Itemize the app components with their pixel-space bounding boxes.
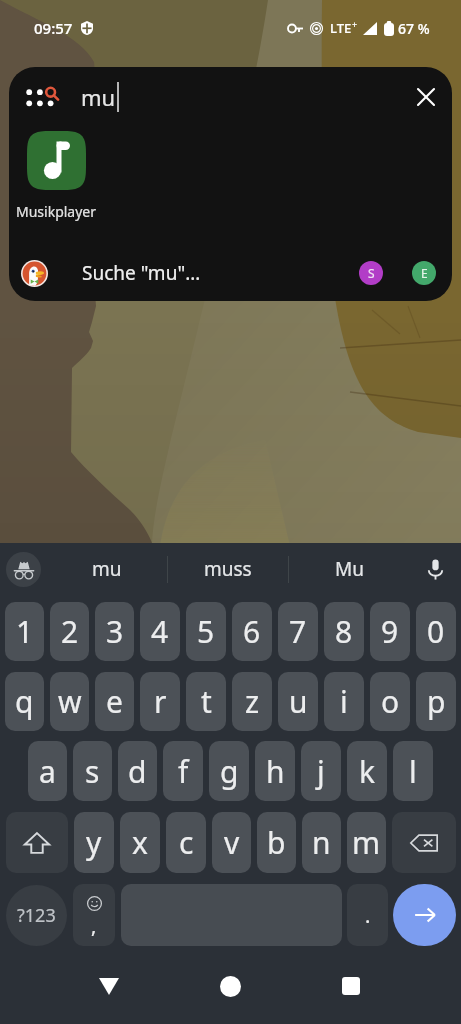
- button[interactable]: y: [74, 812, 114, 873]
- button[interactable]: c: [166, 812, 206, 873]
- button[interactable]: b: [257, 812, 296, 873]
- staticText: z: [245, 681, 260, 722]
- button[interactable]: S: [359, 261, 383, 285]
- staticText: v: [224, 822, 240, 863]
- staticText: b: [267, 822, 286, 863]
- staticText: LTE: [330, 19, 352, 37]
- staticText: d: [128, 751, 147, 792]
- staticText: m: [352, 822, 381, 863]
- button[interactable]: Back: [85, 962, 133, 1010]
- button[interactable]: E: [412, 261, 436, 285]
- staticText: 2: [61, 611, 79, 652]
- staticText: muss: [204, 556, 252, 582]
- button[interactable]: 8: [324, 602, 364, 661]
- button[interactable]: q: [5, 672, 44, 731]
- staticText: h: [266, 751, 285, 792]
- button[interactable]: 6: [232, 602, 272, 661]
- staticText: ,: [91, 912, 97, 939]
- button[interactable]: p: [416, 672, 456, 731]
- staticText: w: [58, 681, 82, 722]
- staticText: Mu: [335, 556, 364, 582]
- button[interactable]: 4: [140, 602, 180, 661]
- button[interactable]: Close: [409, 80, 443, 114]
- staticText: Suche "mu"…: [82, 260, 201, 286]
- staticText: i: [340, 681, 348, 722]
- button[interactable]: Musikplayer: [16, 131, 97, 221]
- button[interactable]: Home: [206, 962, 254, 1010]
- staticText: g: [220, 751, 239, 792]
- button[interactable]: u: [278, 672, 318, 731]
- button[interactable]: Voice input: [415, 549, 455, 589]
- button[interactable]: z: [232, 672, 272, 731]
- staticText: r: [154, 681, 167, 722]
- button[interactable]: x: [120, 812, 160, 873]
- staticText: 3: [106, 611, 124, 652]
- button[interactable]: Recents: [327, 962, 375, 1010]
- staticText: 8: [335, 611, 353, 652]
- staticText: ?123: [17, 903, 56, 928]
- staticText: l: [409, 751, 417, 792]
- staticText: 9: [381, 611, 399, 652]
- button[interactable]: Incognito: [6, 552, 41, 587]
- button[interactable]: muss: [168, 543, 288, 595]
- button[interactable]: 2: [50, 602, 89, 661]
- staticText: u: [289, 681, 308, 722]
- button[interactable]: Emoji and comma: [73, 884, 115, 946]
- button[interactable]: Enter: [393, 884, 456, 946]
- button[interactable]: 0: [416, 602, 456, 661]
- button[interactable]: mu: [46, 543, 167, 595]
- button[interactable]: a: [28, 741, 67, 801]
- button[interactable]: d: [118, 741, 157, 801]
- button[interactable]: 1: [5, 602, 44, 661]
- button[interactable]: j: [301, 741, 341, 801]
- button[interactable]: g: [209, 741, 249, 801]
- staticText: E: [421, 265, 428, 281]
- button[interactable]: k: [347, 741, 387, 801]
- button[interactable]: Backspace: [392, 812, 456, 873]
- button[interactable]: .: [347, 884, 388, 946]
- button[interactable]: f: [163, 741, 203, 801]
- button[interactable]: Mu: [289, 543, 409, 595]
- button[interactable]: w: [50, 672, 89, 731]
- staticText: +: [352, 18, 358, 30]
- button[interactable]: s: [73, 741, 112, 801]
- button[interactable]: Shift: [6, 812, 68, 873]
- staticText: s: [85, 751, 100, 792]
- staticText: Musikplayer: [16, 202, 97, 221]
- staticText: x: [132, 822, 148, 863]
- staticText: o: [381, 681, 400, 722]
- staticText: 4: [151, 611, 169, 652]
- staticText: 0: [427, 611, 445, 652]
- staticText: 7: [289, 611, 307, 652]
- staticText: e: [106, 681, 123, 722]
- button[interactable]: 5: [186, 602, 226, 661]
- staticText: 5: [197, 611, 215, 652]
- staticText: p: [427, 681, 446, 722]
- button[interactable]: Suche "mu"…: [9, 245, 452, 301]
- button[interactable]: v: [212, 812, 251, 873]
- button[interactable]: ?123: [6, 885, 67, 946]
- button[interactable]: i: [324, 672, 364, 731]
- button[interactable]: 7: [278, 602, 318, 661]
- staticText: n: [312, 822, 331, 863]
- button[interactable]: h: [255, 741, 295, 801]
- staticText: mu: [92, 556, 122, 582]
- staticText: q: [15, 681, 34, 722]
- button[interactable]: n: [302, 812, 341, 873]
- button[interactable]: o: [370, 672, 410, 731]
- button[interactable]: r: [140, 672, 180, 731]
- staticText: 09:57: [34, 18, 73, 38]
- button[interactable]: l: [393, 741, 433, 801]
- button[interactable]: m: [347, 812, 386, 873]
- staticText: 6: [243, 611, 261, 652]
- other: App drawer search: [26, 88, 59, 107]
- staticText: 1: [16, 611, 34, 652]
- staticText: c: [179, 822, 194, 863]
- staticText: k: [359, 751, 376, 792]
- button[interactable]: e: [95, 672, 134, 731]
- button[interactable]: 9: [370, 602, 410, 661]
- button[interactable]: t: [186, 672, 226, 731]
- staticText: .: [365, 902, 371, 929]
- button[interactable]: 3: [95, 602, 134, 661]
